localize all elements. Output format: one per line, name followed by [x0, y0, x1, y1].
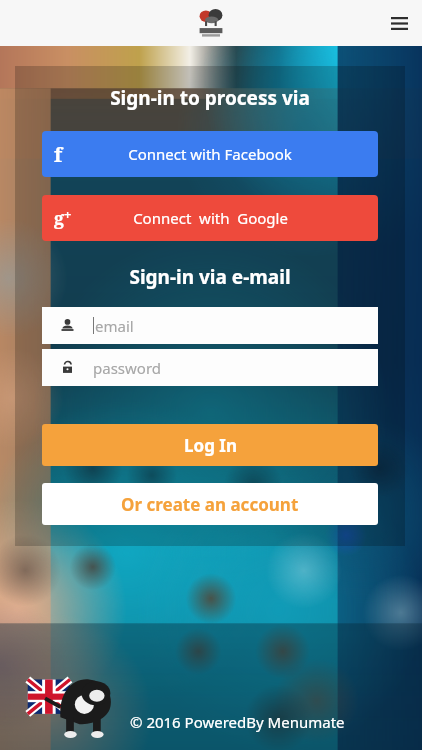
button[interactable]: password: [42, 349, 378, 386]
staticText: Connect with Google: [133, 208, 288, 228]
button[interactable]: Log In: [42, 424, 378, 466]
staticText: password: [93, 358, 161, 378]
button[interactable]: email: [42, 307, 378, 344]
staticText: Sign-in to process via: [42, 85, 378, 111]
staticText: Log In: [184, 434, 237, 457]
button[interactable]: Menu: [382, 6, 416, 40]
button[interactable]: g⁺: [42, 195, 378, 241]
staticText: Sign-in via e-mail: [42, 264, 378, 290]
button[interactable]: Or create an account: [42, 483, 378, 525]
staticText: f: [54, 141, 63, 168]
staticText: Or create an account: [121, 493, 299, 516]
staticText: © 2016 PoweredBy Menumate: [130, 712, 345, 732]
staticText: email: [95, 316, 134, 336]
staticText: Connect with Facebook: [128, 144, 292, 164]
staticText: g⁺: [54, 206, 72, 231]
button[interactable]: f: [42, 131, 378, 177]
